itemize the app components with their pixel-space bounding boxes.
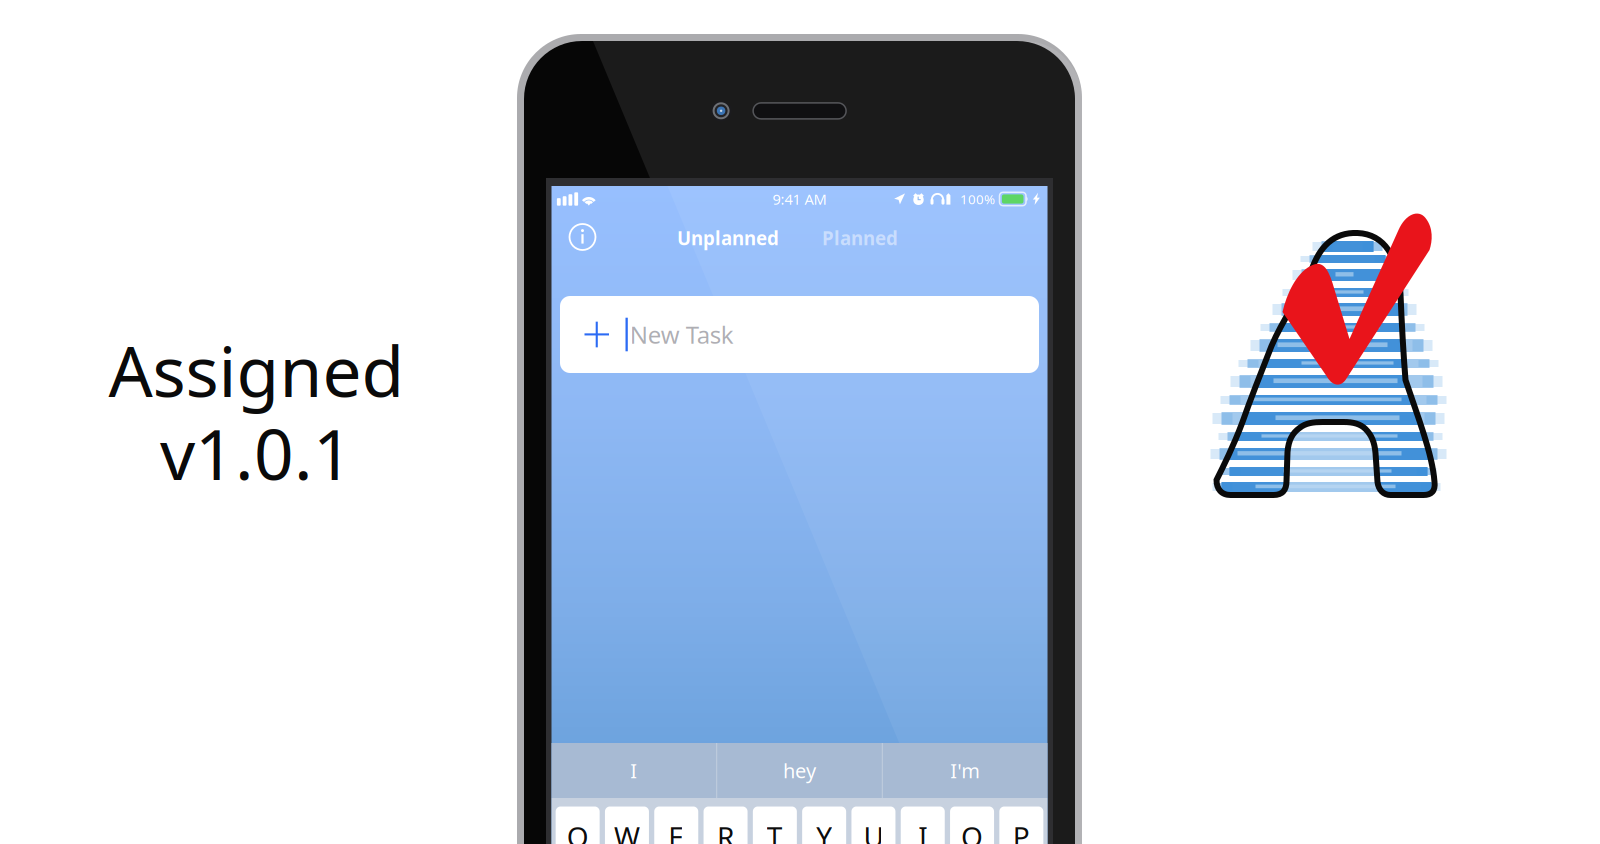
- button[interactable]: W: [605, 806, 649, 844]
- staticText: hey: [783, 757, 816, 784]
- button[interactable]: Planned: [819, 217, 901, 259]
- button[interactable]: New Task: [560, 296, 1039, 373]
- button[interactable]: I: [901, 806, 945, 844]
- staticText: New Task: [630, 319, 734, 350]
- button[interactable]: I: [551, 743, 716, 798]
- staticText: U: [863, 818, 883, 844]
- staticText: W: [614, 818, 640, 844]
- staticText: 9:41 AM: [772, 189, 826, 209]
- button[interactable]: T: [753, 806, 797, 844]
- button[interactable]: E: [654, 806, 698, 844]
- staticText: E: [668, 818, 684, 844]
- staticText: I: [630, 757, 637, 784]
- staticText: I'm: [950, 757, 980, 784]
- staticText: I: [918, 818, 927, 844]
- staticText: O: [961, 818, 983, 844]
- button[interactable]: Unplanned: [674, 217, 782, 259]
- staticText: v1.0.1: [160, 407, 353, 499]
- staticText: Y: [816, 818, 832, 844]
- staticText: 100%: [960, 190, 995, 208]
- button[interactable]: P: [999, 806, 1043, 844]
- button[interactable]: R: [703, 806, 747, 844]
- button[interactable]: U: [851, 806, 895, 844]
- button[interactable]: Q: [556, 806, 600, 844]
- button[interactable]: Y: [802, 806, 846, 844]
- button[interactable]: O: [950, 806, 994, 844]
- staticText: T: [767, 818, 783, 844]
- staticText: P: [1013, 818, 1030, 844]
- button[interactable]: hey: [717, 743, 882, 798]
- button[interactable]: I'm: [883, 743, 1047, 798]
- staticText: Planned: [822, 226, 898, 250]
- staticText: R: [717, 818, 734, 844]
- staticText: Q: [567, 818, 589, 844]
- button[interactable]: About: [551, 212, 613, 262]
- staticText: Assigned: [108, 324, 404, 416]
- staticText: Unplanned: [677, 226, 779, 250]
